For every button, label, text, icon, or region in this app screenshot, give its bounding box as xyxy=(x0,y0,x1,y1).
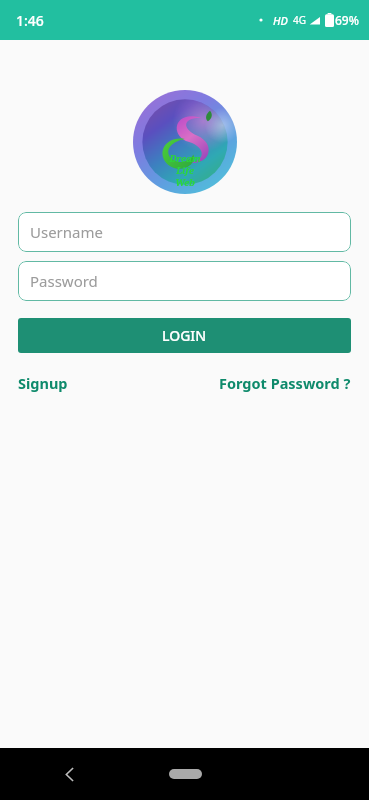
button[interactable]: Password xyxy=(18,261,351,301)
staticText: Web xyxy=(175,176,195,188)
staticText: LOGIN xyxy=(162,326,207,345)
staticText: Dream xyxy=(169,152,201,164)
button[interactable]: Username xyxy=(18,212,351,252)
button[interactable]: LOGIN xyxy=(18,318,351,353)
staticText: 1:46 xyxy=(16,11,44,30)
button[interactable]: Forgot Password ? xyxy=(219,371,351,395)
button[interactable]: Home xyxy=(157,761,213,787)
button[interactable]: Back xyxy=(52,756,88,792)
staticText: 4G xyxy=(293,13,306,27)
button[interactable]: Signup xyxy=(18,371,68,395)
staticText: Username xyxy=(30,222,103,242)
staticText: HD xyxy=(273,13,288,28)
staticText: Signup xyxy=(18,373,68,393)
staticText: Life xyxy=(176,164,194,176)
staticText: 69% xyxy=(335,12,359,28)
staticText: Password xyxy=(30,271,98,291)
staticText: Forgot Password ? xyxy=(219,373,351,393)
